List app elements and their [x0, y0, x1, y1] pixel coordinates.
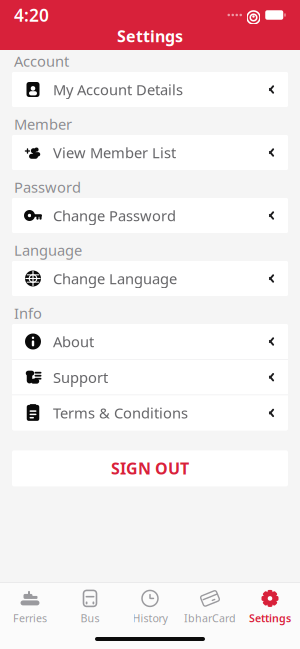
staticText: 4:20	[14, 3, 49, 26]
staticText: Settings	[249, 611, 291, 625]
staticText: Change Password	[53, 206, 176, 225]
button[interactable]: About	[12, 324, 288, 359]
button[interactable]: Change Language	[12, 261, 288, 296]
button[interactable]: Bus	[60, 583, 120, 629]
staticText: Settings	[117, 25, 183, 47]
button[interactable]: History	[120, 583, 180, 629]
button[interactable]: Settings	[240, 583, 300, 629]
staticText: Ferries	[13, 611, 47, 625]
staticText: Support	[53, 367, 108, 387]
staticText: Bus	[80, 611, 99, 625]
staticText: IbharCard	[184, 611, 236, 625]
staticText: About	[53, 332, 94, 351]
staticText: Member	[14, 114, 72, 134]
staticText: Info	[14, 303, 42, 323]
button[interactable]: IbharCard	[180, 583, 240, 629]
staticText: Change Language	[53, 269, 177, 288]
button[interactable]: Support	[12, 360, 288, 395]
button[interactable]: My Account Details	[12, 72, 288, 107]
staticText: History	[132, 611, 167, 625]
button[interactable]: View Member List	[12, 135, 288, 170]
button[interactable]: Ferries	[0, 583, 60, 629]
button[interactable]: Terms & Conditions	[12, 395, 288, 430]
button[interactable]: SIGN OUT	[12, 450, 288, 486]
staticText: My Account Details	[53, 80, 183, 99]
staticText: View Member List	[53, 143, 176, 162]
staticText: Account	[14, 51, 69, 71]
staticText: SIGN OUT	[111, 458, 189, 479]
staticText: Terms & Conditions	[53, 403, 188, 423]
button[interactable]: Change Password	[12, 198, 288, 233]
staticText: Language	[14, 240, 82, 260]
staticText: Password	[14, 177, 81, 197]
